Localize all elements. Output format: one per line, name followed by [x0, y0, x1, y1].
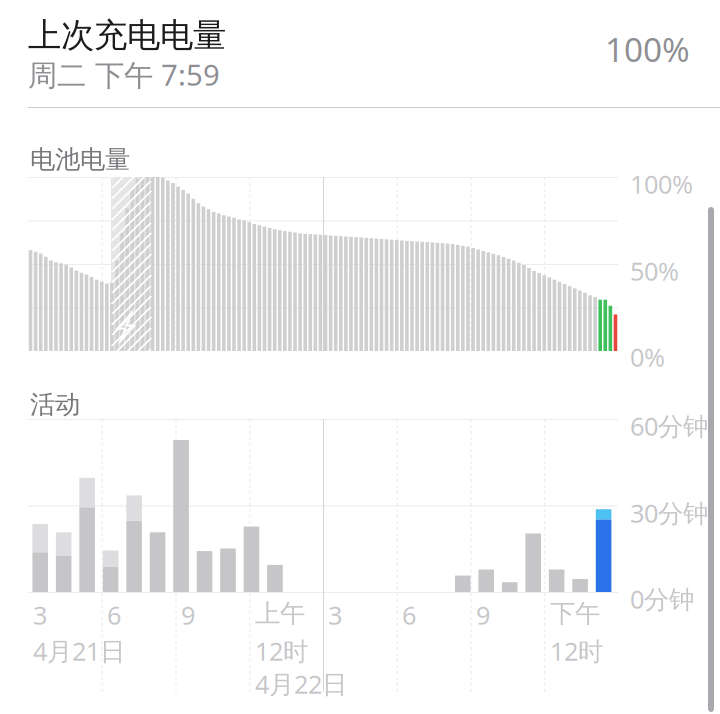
staticText: 9: [476, 598, 490, 632]
staticText: 4月21日: [33, 634, 125, 668]
staticText: 12时: [550, 634, 603, 668]
staticText: 30分钟: [630, 496, 708, 530]
staticText: 0分钟: [630, 582, 694, 616]
staticText: 6: [402, 598, 416, 632]
staticText: 6: [107, 598, 121, 632]
staticText: 12时: [255, 634, 308, 668]
staticText: 电池电量: [30, 144, 130, 175]
staticText: 周二 下午 7:59: [28, 55, 220, 94]
staticText: 活动: [30, 389, 80, 420]
staticText: 60分钟: [630, 409, 708, 443]
staticText: 100%: [605, 27, 690, 71]
staticText: 上次充电电量: [28, 15, 226, 56]
staticText: 3: [33, 598, 47, 632]
staticText: 50%: [630, 254, 679, 288]
staticText: 9: [181, 598, 195, 632]
staticText: 下午: [550, 598, 600, 629]
staticText: 3: [328, 598, 342, 632]
staticText: 4月22日: [255, 667, 347, 701]
staticText: 0%: [630, 340, 665, 374]
staticText: 100%: [630, 167, 693, 201]
staticText: 上午: [255, 598, 305, 629]
